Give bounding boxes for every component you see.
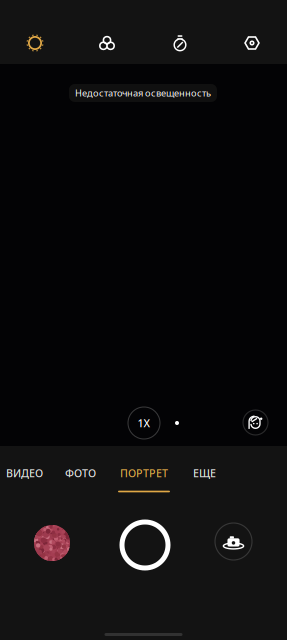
button[interactable]: Switch camera: [215, 523, 252, 560]
button[interactable]: 1X: [128, 407, 160, 439]
staticText: Недостаточная освещенность: [75, 87, 211, 99]
button[interactable]: ПОРТРЕТ: [114, 461, 174, 499]
button[interactable]: 2X zoom: [166, 412, 188, 434]
button[interactable]: ВИДЕО: [2, 461, 47, 499]
button[interactable]: Timer: [148, 22, 212, 64]
staticText: ПОРТРЕТ: [120, 466, 168, 480]
button[interactable]: Beauty effects: [243, 410, 268, 435]
button[interactable]: ФОТО: [61, 461, 100, 499]
button[interactable]: Last photo: [34, 525, 70, 561]
button[interactable]: Settings: [220, 22, 284, 64]
staticText: ФОТО: [65, 466, 96, 480]
staticText: ЕЩЕ: [193, 466, 216, 480]
button[interactable]: ЕЩЕ: [188, 461, 221, 499]
button[interactable]: Low light: [3, 22, 67, 64]
button[interactable]: Filters: [75, 22, 139, 64]
staticText: ВИДЕО: [6, 466, 43, 480]
staticText: 1X: [137, 416, 150, 430]
button[interactable]: Take photo: [119, 519, 171, 571]
